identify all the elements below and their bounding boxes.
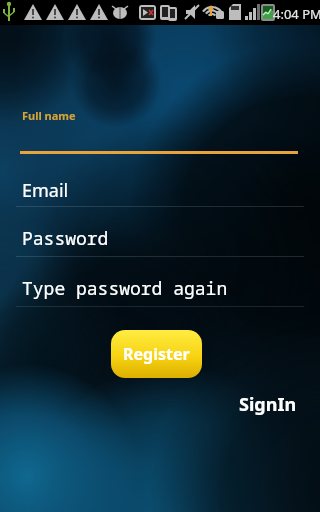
staticText: 4:04 PM	[273, 5, 320, 23]
button[interactable]: Password	[16, 224, 304, 257]
staticText: Register	[123, 343, 190, 365]
button[interactable]: Full name	[16, 100, 304, 155]
staticText: Password	[22, 226, 109, 251]
staticText: SignIn	[239, 392, 297, 417]
button[interactable]: Register	[111, 330, 202, 378]
button[interactable]: Type password again	[16, 274, 304, 307]
staticText: Full name	[22, 108, 76, 123]
button[interactable]: Email	[16, 175, 304, 208]
staticText: Email	[22, 178, 69, 203]
staticText: Type password again	[22, 276, 228, 301]
button[interactable]: SignIn	[239, 392, 297, 417]
